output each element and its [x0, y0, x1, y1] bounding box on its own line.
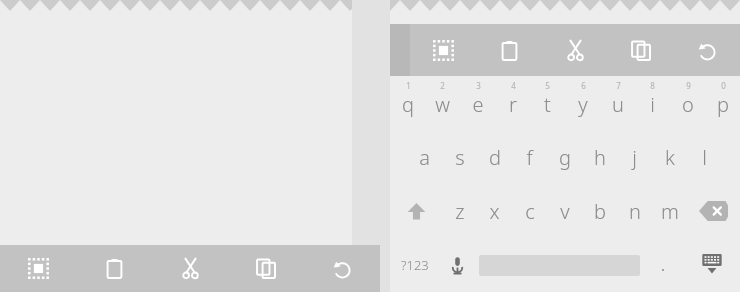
staticText: i: [650, 91, 655, 118]
button[interactable]: m: [652, 184, 687, 238]
staticText: n: [629, 198, 641, 225]
staticText: 7: [616, 80, 621, 91]
staticText: o: [682, 91, 694, 118]
button[interactable]: s: [442, 130, 477, 184]
button[interactable]: Cut: [542, 24, 608, 76]
button[interactable]: .: [643, 238, 684, 292]
button[interactable]: Copy: [608, 24, 674, 76]
staticText: m: [661, 198, 679, 225]
button[interactable]: 6: [565, 76, 600, 130]
staticText: h: [594, 144, 606, 171]
button[interactable]: l: [687, 130, 722, 184]
staticText: j: [632, 144, 637, 171]
staticText: c: [525, 198, 535, 225]
staticText: g: [559, 144, 571, 171]
button[interactable]: Paste: [476, 24, 542, 76]
button[interactable]: Hide keyboard: [684, 238, 740, 292]
staticText: s: [455, 144, 465, 171]
staticText: a: [419, 144, 430, 171]
staticText: v: [560, 198, 570, 225]
staticText: 2: [440, 80, 445, 91]
button[interactable]: Voice input: [439, 238, 476, 292]
button[interactable]: 9: [670, 76, 705, 130]
button[interactable]: 2: [425, 76, 460, 130]
staticText: r: [509, 91, 517, 118]
button[interactable]: 1: [390, 76, 425, 130]
staticText: 5: [545, 80, 550, 91]
staticText: 9: [686, 80, 691, 91]
button[interactable]: 7: [600, 76, 635, 130]
button[interactable]: c: [512, 184, 547, 238]
button[interactable]: v: [547, 184, 582, 238]
staticText: ?123: [401, 256, 429, 274]
staticText: q: [402, 91, 414, 118]
button[interactable]: Undo: [304, 245, 380, 292]
button[interactable]: Cut: [152, 245, 228, 292]
staticText: e: [472, 91, 484, 118]
button[interactable]: Select all: [0, 245, 76, 292]
button[interactable]: Shift: [390, 184, 442, 238]
staticText: d: [489, 144, 501, 171]
staticText: t: [544, 91, 551, 118]
staticText: f: [526, 144, 533, 171]
button[interactable]: ?123: [390, 238, 439, 292]
button[interactable]: n: [617, 184, 652, 238]
staticText: .: [661, 255, 666, 275]
staticText: 3: [476, 80, 481, 91]
button[interactable]: Backspace: [687, 184, 740, 238]
staticText: 8: [650, 80, 655, 91]
button[interactable]: 0: [705, 76, 740, 130]
staticText: 0: [721, 80, 726, 91]
staticText: w: [435, 91, 450, 118]
staticText: p: [717, 91, 729, 118]
button[interactable]: b: [582, 184, 617, 238]
staticText: z: [455, 198, 465, 225]
staticText: 6: [581, 80, 586, 91]
staticText: x: [489, 198, 500, 225]
button[interactable]: j: [617, 130, 652, 184]
button[interactable]: 4: [495, 76, 530, 130]
button[interactable]: g: [547, 130, 582, 184]
button[interactable]: Undo: [674, 24, 740, 76]
button[interactable]: a: [407, 130, 442, 184]
button[interactable]: Copy: [228, 245, 304, 292]
staticText: k: [665, 144, 675, 171]
staticText: 4: [511, 80, 516, 91]
staticText: y: [578, 91, 588, 118]
button[interactable]: 5: [530, 76, 565, 130]
staticText: u: [612, 91, 624, 118]
button[interactable]: x: [477, 184, 512, 238]
staticText: l: [702, 144, 707, 171]
button[interactable]: h: [582, 130, 617, 184]
button[interactable]: Select all: [410, 24, 476, 76]
button[interactable]: d: [477, 130, 512, 184]
button[interactable]: z: [442, 184, 477, 238]
button[interactable]: 8: [635, 76, 670, 130]
button[interactable]: 3: [460, 76, 495, 130]
button[interactable]: Paste: [76, 245, 152, 292]
staticText: 1: [406, 80, 411, 91]
button[interactable]: f: [512, 130, 547, 184]
button[interactable]: k: [652, 130, 687, 184]
staticText: b: [594, 198, 606, 225]
